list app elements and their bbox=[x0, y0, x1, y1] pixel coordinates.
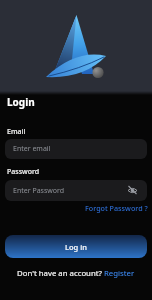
staticText: Login bbox=[7, 95, 35, 109]
staticText: Password bbox=[7, 167, 40, 177]
staticText: Email bbox=[7, 127, 26, 137]
button[interactable]: Enter email bbox=[5, 139, 147, 159]
button[interactable]: Forgot Password ? bbox=[85, 203, 148, 213]
staticText: Log in bbox=[65, 242, 87, 252]
button[interactable]: Log in bbox=[5, 235, 147, 258]
button[interactable]: Enter Password bbox=[5, 180, 147, 201]
staticText: Enter email bbox=[13, 144, 51, 154]
staticText: Enter Password bbox=[13, 186, 65, 196]
button[interactable]: Don't have an account? Register bbox=[17, 268, 135, 279]
